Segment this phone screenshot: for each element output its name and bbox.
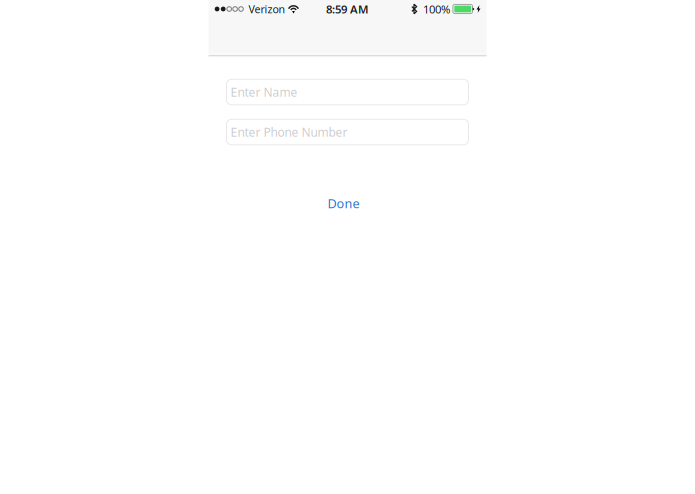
button[interactable]: Enter Name [226, 79, 468, 105]
staticText: Done [327, 195, 359, 212]
button[interactable]: Done [327, 195, 359, 212]
button[interactable]: Enter Phone Number [226, 119, 468, 145]
staticText: Enter Name [230, 84, 297, 100]
staticText: Verizon [248, 2, 285, 16]
staticText: 100% [423, 1, 450, 17]
staticText: Enter Phone Number [230, 124, 347, 140]
staticText: 8:59 AM [326, 1, 369, 17]
